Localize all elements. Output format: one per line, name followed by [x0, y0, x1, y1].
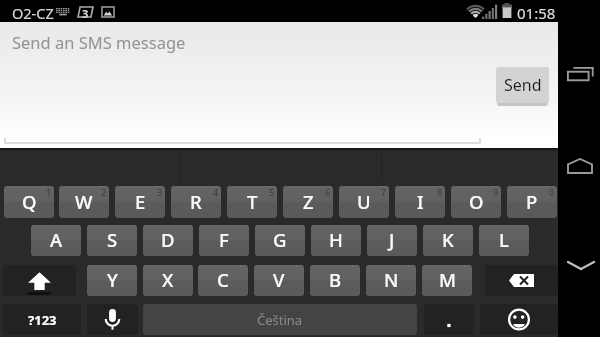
staticText: R	[190, 189, 202, 214]
button[interactable]: P	[507, 186, 557, 218]
staticText: E	[135, 189, 146, 214]
button[interactable]: Z	[283, 186, 333, 218]
button[interactable]: S	[87, 225, 137, 256]
button[interactable]: M	[422, 265, 472, 296]
button[interactable]: Period	[424, 304, 474, 335]
button[interactable]: Shift	[3, 265, 76, 296]
button[interactable]: W	[59, 186, 109, 218]
button[interactable]: Čeština	[143, 304, 417, 335]
button[interactable]: A	[31, 225, 81, 256]
button[interactable]: Send	[496, 67, 549, 103]
staticText: M	[439, 267, 456, 292]
staticText: N	[384, 267, 399, 292]
button[interactable]: X	[143, 265, 193, 296]
button[interactable]: Recents	[558, 55, 600, 97]
staticText: F	[219, 227, 229, 252]
button[interactable]: K	[423, 225, 473, 256]
staticText: Send	[504, 74, 542, 96]
button[interactable]: G	[255, 225, 305, 256]
button[interactable]: N	[366, 265, 416, 296]
staticText: Send an SMS message	[12, 31, 186, 53]
staticText: A	[50, 227, 63, 252]
staticText: T	[247, 189, 258, 214]
button[interactable]: Back	[558, 243, 600, 285]
staticText: 8	[437, 186, 443, 198]
staticText: K	[442, 227, 454, 252]
staticText: 01:58	[517, 3, 556, 23]
staticText: W	[75, 189, 93, 214]
button[interactable]: I	[395, 186, 445, 218]
staticText: C	[217, 267, 229, 292]
button[interactable]: Y	[87, 265, 137, 296]
staticText: 9	[493, 186, 499, 198]
staticText: P	[526, 189, 538, 214]
staticText: 7	[381, 186, 387, 198]
staticText: ?123	[28, 311, 57, 329]
staticText: D	[161, 227, 175, 252]
button[interactable]: C	[198, 265, 248, 296]
staticText: V	[273, 267, 285, 292]
button[interactable]: R	[171, 186, 221, 218]
staticText: H	[329, 227, 343, 252]
button[interactable]: O	[451, 186, 501, 218]
staticText: J	[389, 227, 395, 252]
staticText: 2	[101, 186, 107, 198]
button[interactable]: L	[479, 225, 529, 256]
button[interactable]: T	[227, 186, 277, 218]
button[interactable]: Home	[558, 145, 600, 187]
staticText: B	[329, 267, 342, 292]
staticText: Q	[22, 189, 37, 214]
button[interactable]: V	[254, 265, 304, 296]
button[interactable]: D	[143, 225, 193, 256]
staticText: 6	[325, 186, 331, 198]
button[interactable]: U	[339, 186, 389, 218]
staticText: 4	[213, 186, 219, 198]
staticText: 5	[269, 186, 275, 198]
button[interactable]: J	[367, 225, 417, 256]
staticText: O2-CZ	[12, 3, 54, 23]
staticText: I	[417, 189, 424, 214]
button[interactable]: Symbols	[3, 304, 81, 335]
button[interactable]: F	[199, 225, 249, 256]
button[interactable]: B	[310, 265, 360, 296]
staticText: G	[273, 227, 287, 252]
staticText: Z	[303, 189, 314, 214]
button[interactable]: H	[311, 225, 361, 256]
staticText: Čeština	[257, 311, 303, 329]
staticText: L	[499, 227, 509, 252]
staticText: Y	[107, 267, 118, 292]
staticText: S	[107, 227, 118, 252]
staticText: 3	[82, 6, 89, 21]
button[interactable]: Voice input	[87, 304, 138, 335]
button[interactable]: Q	[4, 186, 54, 218]
button[interactable]: Emoji	[480, 304, 558, 335]
button[interactable]: Backspace	[485, 265, 558, 296]
staticText: 0	[549, 186, 555, 198]
staticText: O	[469, 189, 484, 214]
staticText: 1	[46, 186, 52, 198]
button[interactable]: E	[115, 186, 165, 218]
staticText: U	[357, 189, 371, 214]
staticText: X	[162, 267, 174, 292]
staticText: 3	[157, 186, 163, 198]
